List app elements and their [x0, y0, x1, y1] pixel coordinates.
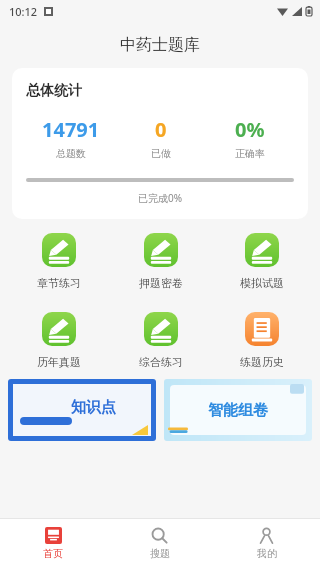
staticText: 总题数	[56, 147, 86, 160]
staticText: 已做	[151, 147, 171, 160]
staticText: 正确率	[235, 147, 265, 160]
staticText: 中药士题库	[120, 35, 200, 55]
staticText: 模拟试题	[240, 276, 284, 290]
staticText: 已完成0%	[26, 191, 294, 205]
button[interactable]: 押题密卷	[110, 229, 211, 294]
button[interactable]: 智能组卷	[164, 379, 312, 441]
staticText: 总体统计	[26, 82, 82, 100]
staticText: 搜题	[150, 547, 170, 560]
staticText: 智能组卷	[208, 401, 268, 420]
button[interactable]: 历年真题	[8, 308, 110, 373]
button[interactable]: 知识点	[8, 379, 156, 441]
staticText: 14791	[42, 116, 100, 143]
staticText: 押题密卷	[139, 276, 183, 290]
staticText: 历年真题	[37, 355, 81, 369]
staticText: 0%	[235, 116, 265, 143]
staticText: 0	[155, 116, 167, 143]
button[interactable]: 搜题	[106, 519, 213, 568]
button[interactable]: 综合练习	[110, 308, 211, 373]
button[interactable]: 模拟试题	[211, 229, 312, 294]
button[interactable]: 章节练习	[8, 229, 110, 294]
staticText: 知识点	[71, 398, 116, 417]
button[interactable]: 练题历史	[211, 308, 312, 373]
button[interactable]: 首页	[0, 519, 106, 568]
staticText: 章节练习	[37, 276, 81, 290]
button[interactable]: 我的	[213, 519, 320, 568]
staticText: 练题历史	[240, 355, 284, 369]
staticText: 10:12	[9, 4, 38, 19]
staticText: 首页	[43, 547, 63, 560]
staticText: 我的	[257, 547, 277, 560]
staticText: 综合练习	[139, 355, 183, 369]
